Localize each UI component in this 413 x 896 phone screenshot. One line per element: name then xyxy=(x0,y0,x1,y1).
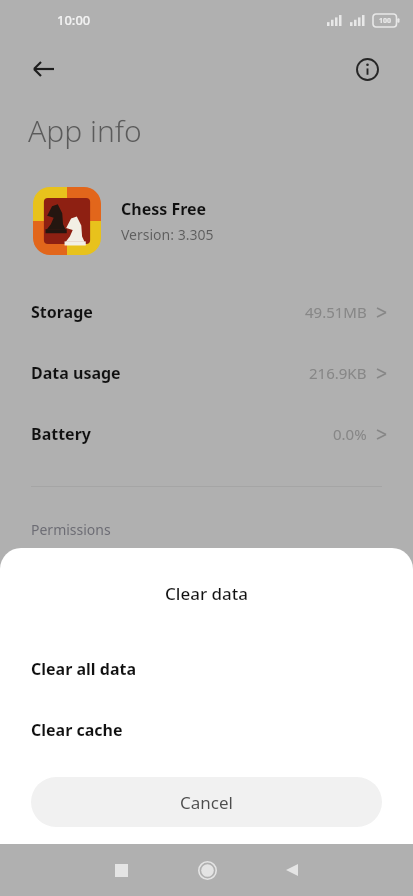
staticText: Battery xyxy=(31,423,91,445)
staticText: 10:00 xyxy=(57,11,91,29)
button[interactable]: Back xyxy=(275,853,309,887)
staticText: 49.51MB xyxy=(305,302,367,322)
staticText: 216.9KB xyxy=(309,363,367,383)
staticText: Data usage xyxy=(31,362,121,384)
staticText: 0.0% xyxy=(333,424,367,444)
button[interactable]: App details xyxy=(347,49,387,89)
staticText: Chess Free xyxy=(121,198,207,220)
button[interactable]: Home xyxy=(188,851,226,889)
button[interactable]: Data usage xyxy=(0,342,413,403)
staticText: Storage xyxy=(31,301,93,323)
staticText: App info xyxy=(28,110,142,151)
button[interactable]: Storage xyxy=(0,281,413,342)
button[interactable]: Clear all data xyxy=(0,638,413,699)
button[interactable]: Cancel xyxy=(31,777,382,827)
button[interactable]: Recents xyxy=(104,853,138,887)
staticText: Cancel xyxy=(180,791,233,814)
staticText: Clear all data xyxy=(31,658,136,680)
staticText: 100 xyxy=(379,16,392,26)
staticText: Clear data xyxy=(165,582,248,605)
staticText: Permissions xyxy=(31,520,111,539)
staticText: Clear cache xyxy=(31,719,123,741)
staticText: Version: 3.305 xyxy=(121,225,214,244)
button[interactable]: Back xyxy=(24,49,64,89)
button[interactable]: Clear cache xyxy=(0,699,413,760)
button[interactable]: Battery xyxy=(0,403,413,464)
